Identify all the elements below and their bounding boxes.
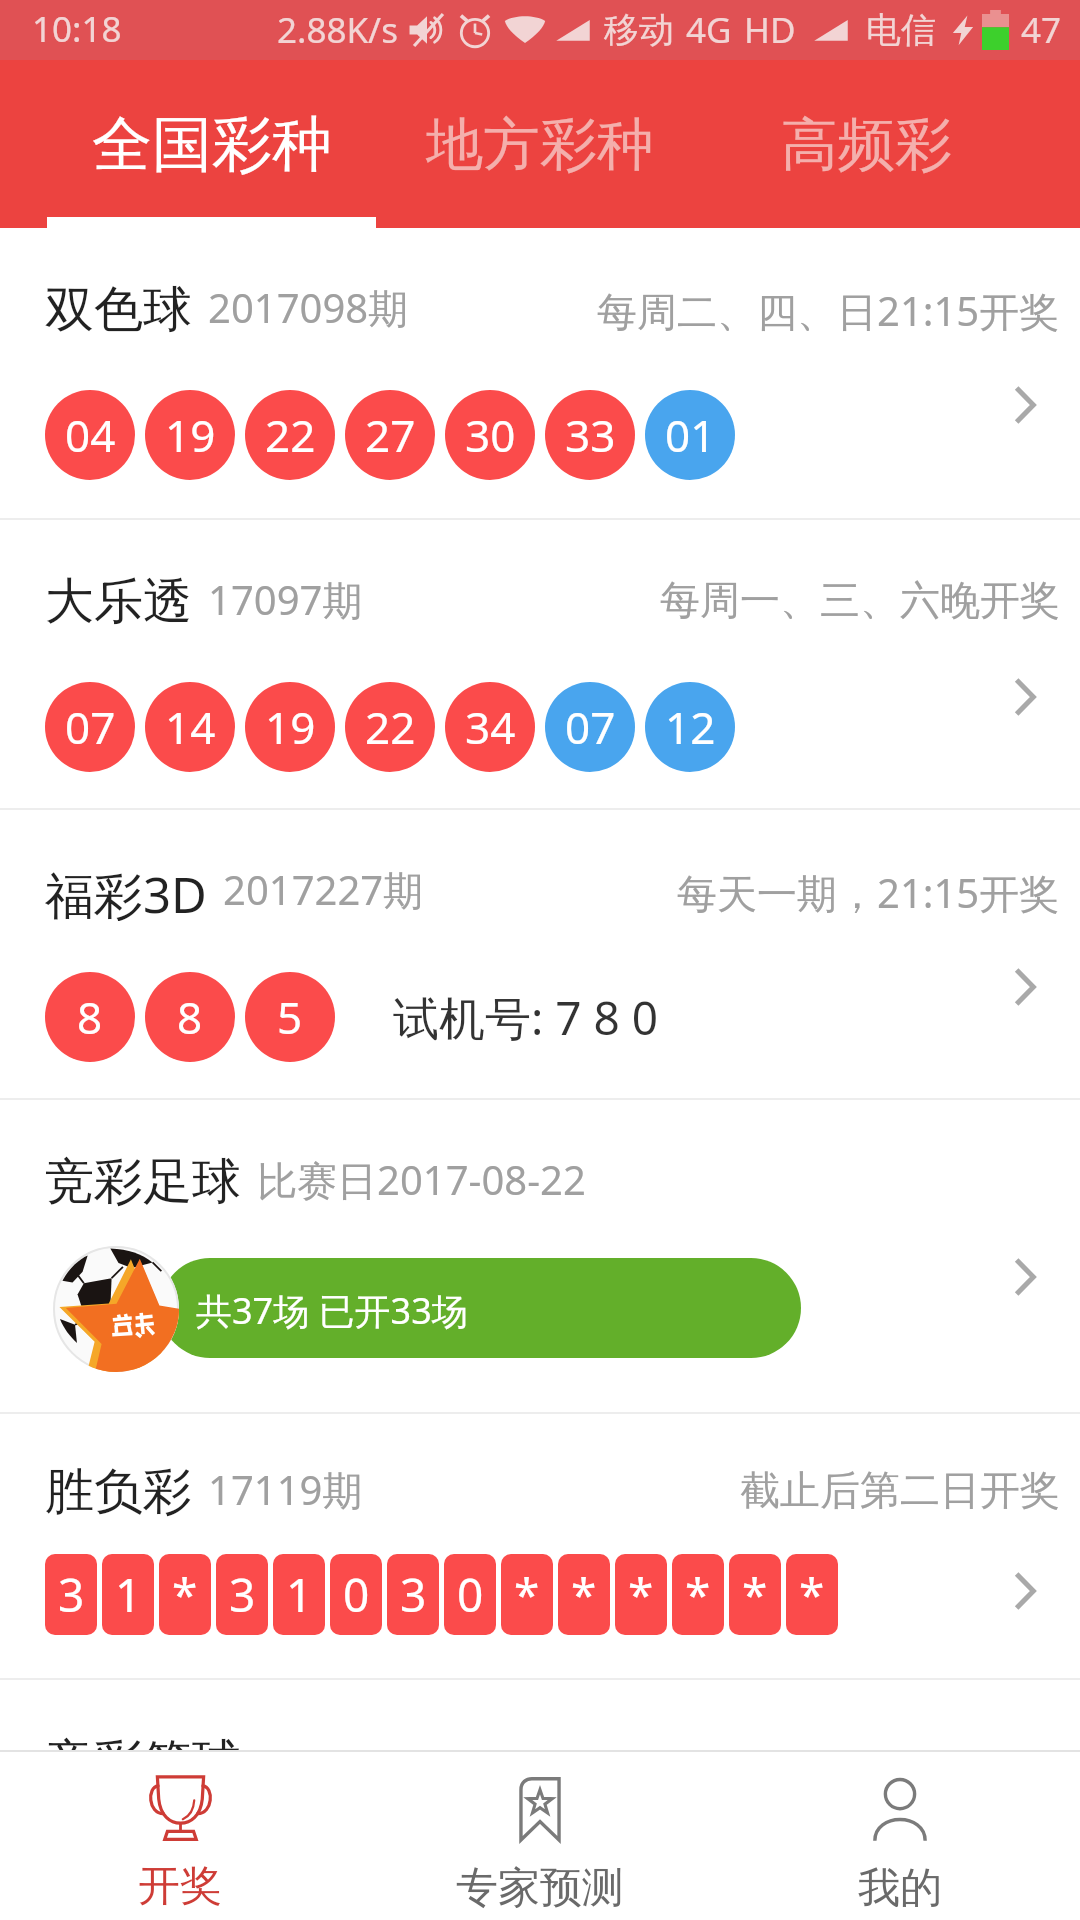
staticText: 比赛日2017-08-22	[257, 1152, 586, 1207]
staticText: 移动	[604, 8, 674, 52]
staticText: 04	[65, 405, 116, 465]
staticText: 每周二、四、日21:15开奖	[597, 283, 1060, 338]
button[interactable]: 双色球	[0, 228, 1080, 518]
staticText: *	[742, 1563, 768, 1626]
staticText: 22	[265, 405, 316, 465]
staticText: *	[628, 1563, 654, 1626]
staticText: 2.88K/s	[277, 6, 398, 54]
staticText: 双色球	[45, 279, 192, 339]
button[interactable]: 大乐透	[0, 520, 1080, 808]
staticText: 22	[365, 697, 416, 757]
staticText: 每周一、三、六晚开奖	[660, 575, 1060, 625]
staticText: 10:18	[32, 5, 122, 53]
staticText: 47	[1021, 6, 1062, 54]
staticText: 高频彩	[781, 109, 952, 181]
staticText: 3	[229, 1563, 256, 1626]
staticText: 5	[277, 987, 303, 1047]
staticText: 17097期	[208, 572, 363, 627]
staticText: 共37场 已开33场	[196, 1286, 468, 1335]
staticText: 截止后第二日开奖	[740, 1465, 1060, 1515]
staticText: 01	[665, 405, 716, 465]
staticText: 12	[665, 697, 716, 757]
staticText: 14	[165, 697, 216, 757]
staticText: 地方彩种	[426, 109, 654, 181]
staticText: 3	[400, 1563, 427, 1626]
staticText: 每天一期，21:15开奖	[677, 865, 1060, 920]
staticText: 竞彩足球	[45, 1151, 241, 1211]
staticText: 全国彩种	[92, 107, 332, 183]
staticText: 专家预测	[456, 1862, 624, 1915]
staticText: 竞彩篮球	[45, 1732, 241, 1750]
staticText: 19	[165, 405, 216, 465]
button[interactable]: 全国彩种	[62, 60, 362, 215]
staticText: 8	[177, 987, 203, 1047]
button[interactable]: 开奖	[0, 1752, 360, 1920]
staticText: 34	[465, 697, 516, 757]
staticText: 开奖	[138, 1860, 222, 1913]
staticText: 2017227期	[223, 862, 424, 917]
staticText: *	[172, 1563, 198, 1626]
staticText: *	[571, 1563, 597, 1626]
staticText: 27	[365, 405, 416, 465]
button[interactable]: 我的	[720, 1752, 1080, 1920]
staticText: *	[799, 1563, 825, 1626]
staticText: 30	[465, 405, 516, 465]
button[interactable]: 福彩3D	[0, 810, 1080, 1098]
staticText: 33	[565, 405, 616, 465]
staticText: 07	[65, 697, 116, 757]
staticText: 0	[457, 1563, 484, 1626]
staticText: 胜负彩	[45, 1461, 192, 1521]
staticText: 3	[58, 1563, 85, 1626]
staticText: 17119期	[208, 1462, 363, 1517]
staticText: 07	[565, 697, 616, 757]
staticText: 19	[265, 697, 316, 757]
button[interactable]: 高频彩	[716, 60, 1016, 215]
staticText: 试机号: 7 8 0	[393, 986, 659, 1049]
staticText: *	[514, 1563, 540, 1626]
button[interactable]: 竞彩篮球	[0, 1680, 1080, 1750]
staticText: 8	[77, 987, 103, 1047]
staticText: 1	[115, 1563, 142, 1626]
button[interactable]: 胜负彩	[0, 1414, 1080, 1678]
staticText: 1	[286, 1563, 313, 1626]
staticText: 0	[343, 1563, 370, 1626]
staticText: 我的	[858, 1862, 942, 1915]
staticText: 2017098期	[208, 280, 409, 335]
staticText: HD	[744, 6, 796, 54]
button[interactable]: 竞彩足球	[0, 1100, 1080, 1412]
button[interactable]: 专家预测	[360, 1752, 720, 1920]
button[interactable]: 地方彩种	[390, 60, 690, 215]
staticText: 4G	[686, 6, 732, 54]
staticText: 福彩3D	[45, 861, 207, 921]
staticText: 大乐透	[45, 571, 192, 631]
staticText: *	[685, 1563, 711, 1626]
staticText: 电信	[866, 8, 936, 52]
